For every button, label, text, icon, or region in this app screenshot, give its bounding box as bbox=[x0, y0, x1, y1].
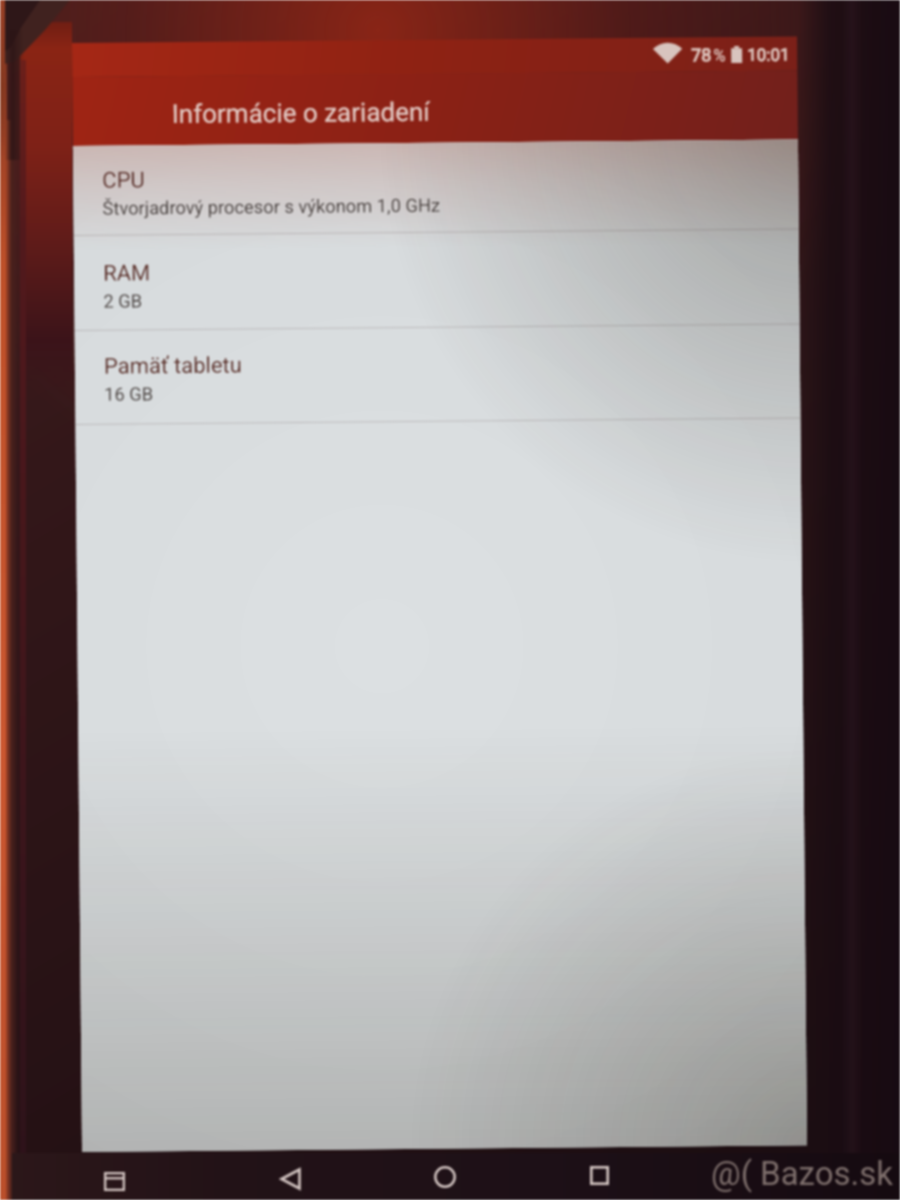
button[interactable]: RAM bbox=[74, 229, 800, 330]
staticText: 78 bbox=[691, 44, 712, 65]
staticText: 16 GB bbox=[104, 383, 153, 405]
button[interactable]: Recent apps bbox=[104, 1172, 125, 1191]
staticText: RAM bbox=[103, 260, 151, 287]
staticText: CPU bbox=[102, 167, 145, 194]
staticText: % bbox=[713, 45, 726, 65]
staticText: Pamäť tabletu bbox=[104, 352, 242, 380]
staticText: 2 GB bbox=[103, 290, 142, 312]
button[interactable]: Pamäť tabletu bbox=[75, 324, 800, 424]
button[interactable]: Home bbox=[434, 1166, 456, 1188]
staticText: @( Bazos.sk bbox=[711, 1154, 894, 1193]
staticText: Informácie o zariadení bbox=[171, 97, 431, 129]
button[interactable]: Back bbox=[280, 1168, 301, 1190]
staticText: Štvorjadrový procesor s výkonom 1,0 GHz bbox=[102, 195, 441, 219]
button[interactable]: Overview bbox=[590, 1166, 609, 1185]
staticText: 10:01 bbox=[747, 44, 790, 65]
button[interactable]: CPU bbox=[73, 139, 799, 235]
